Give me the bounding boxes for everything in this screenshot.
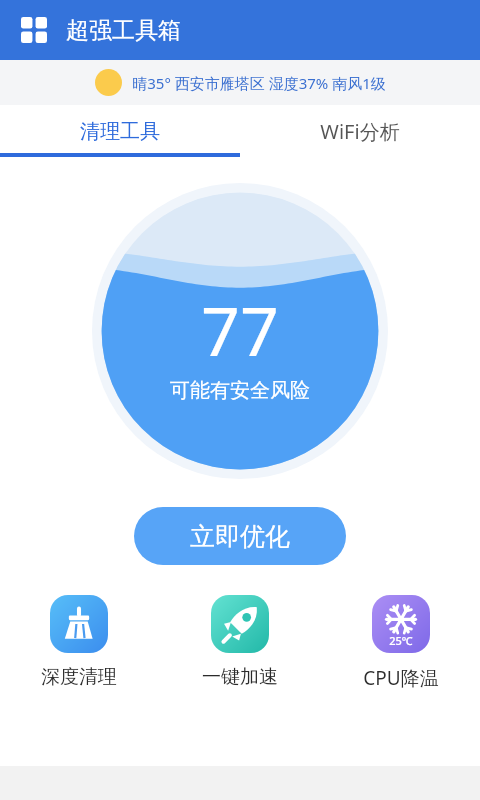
button[interactable]: WiFi分析 — [240, 105, 480, 157]
button[interactable]: 25℃ — [340, 595, 462, 691]
staticText: 深度清理 — [41, 665, 117, 689]
staticText: 超强工具箱 — [66, 16, 181, 45]
staticText: 77 — [201, 283, 279, 376]
staticText: 晴35° 西安市雁塔区 湿度37% 南风1级 — [132, 73, 386, 93]
staticText: 25℃ — [389, 633, 413, 648]
staticText: CPU降温 — [363, 665, 439, 691]
button[interactable]: 一键加速 — [179, 595, 301, 689]
button[interactable]: 立即优化 — [134, 507, 346, 565]
button[interactable]: 清理工具 — [0, 105, 240, 157]
button[interactable]: 深度清理 — [18, 595, 140, 689]
staticText: 立即优化 — [190, 521, 290, 552]
staticText: WiFi分析 — [320, 118, 400, 145]
staticText: 可能有安全风险 — [170, 378, 310, 403]
staticText: 清理工具 — [80, 119, 160, 144]
staticText: 一键加速 — [202, 665, 278, 689]
button[interactable]: Menu — [16, 12, 52, 48]
